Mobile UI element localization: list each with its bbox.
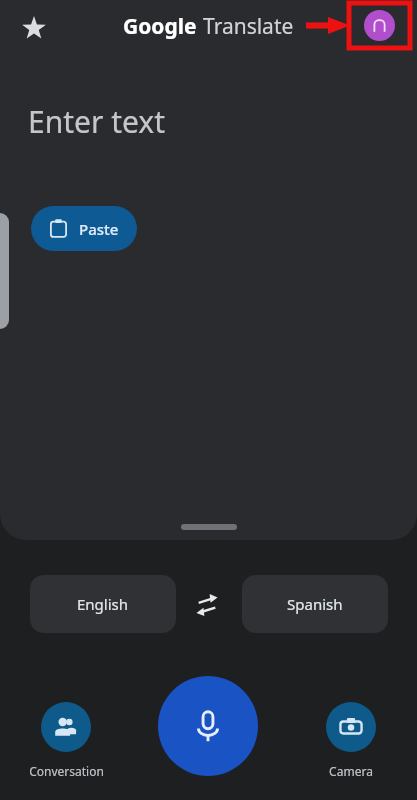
button[interactable]: English (30, 575, 176, 633)
button[interactable]: Account (364, 10, 395, 41)
staticText: Google (123, 12, 197, 41)
button[interactable]: Camera (305, 702, 397, 779)
staticText: English (77, 594, 129, 614)
staticText: Enter text (28, 101, 166, 142)
button[interactable]: Conversation (20, 702, 112, 779)
button[interactable]: Speak (158, 676, 258, 776)
staticText: Translate (203, 12, 294, 41)
staticText: Spanish (287, 594, 343, 614)
staticText: Paste (79, 219, 119, 239)
staticText: Camera (329, 763, 373, 779)
button[interactable]: Paste (31, 206, 137, 251)
button[interactable]: Spanish (242, 575, 388, 633)
button[interactable]: Swap languages (188, 586, 226, 624)
button[interactable]: Saved (14, 8, 54, 48)
staticText: Conversation (29, 763, 104, 779)
